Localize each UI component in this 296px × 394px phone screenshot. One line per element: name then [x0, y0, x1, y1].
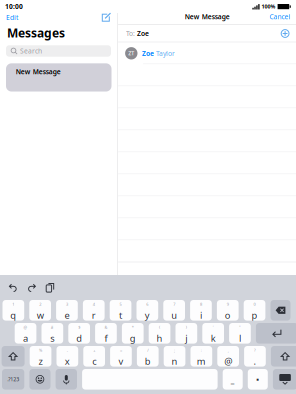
button[interactable]: Add Contact [281, 29, 290, 38]
button[interactable]: Delete [270, 300, 290, 321]
staticText: + [93, 347, 95, 353]
button[interactable]: space [82, 369, 218, 390]
staticText: f [104, 332, 107, 344]
button[interactable]: 8 [190, 300, 212, 321]
staticText: _ [231, 374, 235, 385]
button[interactable]: ; [164, 346, 185, 367]
staticText: ( [159, 324, 160, 330]
button[interactable]: Paste [41, 279, 59, 296]
staticText: o [225, 309, 231, 321]
button[interactable]: % [30, 346, 51, 367]
button[interactable]: Cancel [264, 10, 296, 23]
button[interactable]: & [95, 323, 117, 344]
button[interactable]: 2 [29, 300, 51, 321]
button[interactable]: / [137, 346, 159, 367]
staticText: # [51, 324, 54, 330]
button[interactable]: Hide Keyboard [273, 369, 296, 390]
button[interactable]: ' [202, 323, 224, 344]
staticText: Zoe [142, 49, 154, 58]
button[interactable]: ▪ [248, 369, 268, 390]
button[interactable]: : [190, 346, 212, 367]
staticText: Zoe [135, 29, 149, 38]
staticText: g [130, 332, 136, 344]
button[interactable]: Shift [271, 346, 296, 367]
button[interactable]: New Message [98, 12, 117, 23]
button[interactable]: " [229, 323, 251, 344]
staticText: ? [254, 347, 256, 353]
button[interactable]: ) [175, 323, 197, 344]
button[interactable]: 9 [217, 300, 239, 321]
button[interactable]: 5 [110, 300, 131, 321]
button[interactable]: = [110, 346, 132, 367]
button[interactable]: @ [15, 323, 36, 344]
staticText: v [118, 355, 123, 367]
button[interactable]: # [41, 323, 63, 344]
staticText: ▪ [256, 377, 259, 381]
button[interactable]: ZT [118, 42, 296, 64]
staticText: Edit [6, 13, 18, 22]
button[interactable]: Emoji [29, 369, 50, 390]
staticText: New Message [16, 67, 61, 76]
staticText: " [239, 324, 241, 330]
staticText: ' [213, 324, 214, 330]
button[interactable]: Edit [0, 11, 24, 24]
staticText: b [145, 355, 151, 367]
staticText: 1 [12, 301, 14, 307]
staticText: : [201, 347, 202, 353]
button[interactable]: 1 [2, 300, 24, 321]
staticText: & [104, 324, 107, 330]
staticText: 9 [227, 301, 229, 307]
staticText: l [239, 332, 241, 344]
staticText: x [65, 355, 70, 367]
button[interactable]: * [122, 323, 144, 344]
staticText: r [92, 309, 96, 321]
button[interactable]: + [83, 346, 105, 367]
staticText: 4 [93, 301, 95, 307]
staticText: j [185, 332, 187, 344]
staticText: m [197, 355, 206, 367]
button[interactable]: _ [223, 369, 243, 390]
staticText: .?123 [7, 376, 19, 383]
button[interactable]: Shift [2, 346, 25, 367]
button[interactable]: Dictate [56, 369, 77, 390]
button[interactable]: Redo [22, 279, 41, 296]
button[interactable]: $ [68, 323, 90, 344]
button[interactable]: Undo [4, 279, 22, 296]
staticText: . [253, 355, 256, 367]
staticText: e [64, 309, 69, 321]
button[interactable]: 7 [163, 300, 185, 321]
button[interactable]: 6 [136, 300, 158, 321]
staticText: u [171, 309, 177, 321]
staticText: p [252, 309, 258, 321]
staticText: Messages [7, 25, 65, 41]
staticText: 10:00 [5, 2, 23, 11]
button[interactable]: ? [244, 346, 266, 367]
staticText: / [147, 347, 148, 353]
button[interactable]: , [217, 346, 239, 367]
staticText: % [39, 347, 42, 353]
staticText: s [50, 332, 54, 344]
staticText: z [39, 355, 43, 367]
staticText: n [171, 355, 177, 367]
staticText: Cancel [270, 12, 291, 21]
button[interactable]: Return [256, 323, 296, 344]
button[interactable]: 3 [56, 300, 78, 321]
staticText: 6 [146, 301, 148, 307]
button[interactable]: 0 [244, 300, 265, 321]
button[interactable]: - [56, 346, 78, 367]
staticText: - [67, 347, 68, 353]
staticText: , [228, 347, 229, 353]
staticText: 5 [119, 301, 121, 307]
button[interactable]: ( [149, 323, 170, 344]
staticText: y [145, 309, 150, 321]
button[interactable]: 4 [83, 300, 105, 321]
button[interactable]: New Message [6, 63, 111, 91]
staticText: ; [174, 347, 175, 353]
staticText: @ [23, 324, 27, 330]
staticText: = [120, 347, 122, 353]
staticText: * [132, 324, 134, 330]
staticText: t [119, 309, 122, 321]
staticText: c [92, 355, 96, 367]
button[interactable]: Numbers [2, 369, 24, 390]
staticText: w [37, 309, 44, 321]
